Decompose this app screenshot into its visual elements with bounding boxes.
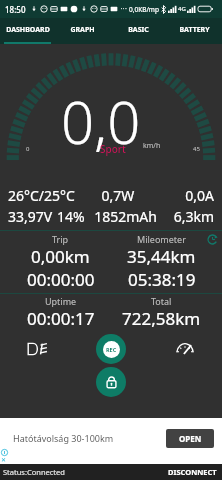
staticText: 0: [26, 145, 30, 153]
staticText: 6,3km: [161, 207, 214, 226]
button[interactable]: Speed mode: [148, 331, 222, 367]
staticText: 00:00:00: [27, 268, 95, 291]
button[interactable]: Record: [96, 334, 126, 364]
staticText: ⋯: [120, 5, 127, 13]
staticText: ✕: [1, 456, 7, 463]
staticText: 1852mAh: [90, 207, 161, 226]
staticText: BATTERY: [179, 25, 210, 35]
staticText: DISCONNECT: [168, 467, 217, 477]
staticText: Hatótávolság 30-100km: [13, 432, 114, 444]
staticText: GRAPH: [70, 25, 95, 35]
button[interactable]: Reset trip: [205, 232, 219, 246]
button[interactable]: Headlight: [0, 331, 74, 367]
staticText: 0,00km: [31, 245, 90, 268]
staticText: Uptime: [45, 295, 77, 307]
button[interactable]: BASIC: [110, 18, 166, 44]
staticText: 722,58km: [122, 307, 201, 330]
staticText: 0,7W: [85, 186, 151, 205]
staticText: Mileometer: [137, 233, 186, 245]
button[interactable]: DISCONNECT: [166, 467, 219, 477]
staticText: 14%: [57, 207, 90, 226]
staticText: km/h: [143, 141, 161, 151]
staticText: Sport: [100, 142, 126, 156]
staticText: 0,0A: [151, 186, 214, 205]
staticText: DASHBOARD: [6, 25, 50, 35]
button[interactable]: Lock: [96, 367, 126, 397]
staticText: 05:38:19: [128, 268, 196, 291]
button[interactable]: BATTERY: [166, 18, 222, 44]
staticText: 4G: [178, 5, 186, 13]
staticText: 0,0: [61, 82, 141, 161]
staticText: 0,0KB/mp: [129, 5, 159, 14]
button[interactable]: DASHBOARD: [0, 18, 55, 44]
staticText: Status:Connected: [3, 467, 65, 477]
button[interactable]: OPEN: [166, 429, 214, 448]
staticText: 26°C/25°C: [8, 186, 85, 205]
staticText: 18:50: [5, 4, 26, 15]
staticText: 35,44km: [127, 245, 196, 268]
button[interactable]: Hatótávolság 30-100km: [0, 418, 222, 464]
staticText: REC: [106, 346, 117, 353]
staticText: BASIC: [128, 25, 149, 35]
staticText: Total: [151, 295, 172, 307]
staticText: 00:00:17: [27, 307, 95, 330]
button[interactable]: GRAPH: [55, 18, 110, 44]
staticText: 33,97V: [8, 207, 57, 226]
staticText: OPEN: [179, 433, 202, 444]
staticText: 45: [193, 145, 200, 153]
staticText: Trip: [52, 233, 69, 245]
